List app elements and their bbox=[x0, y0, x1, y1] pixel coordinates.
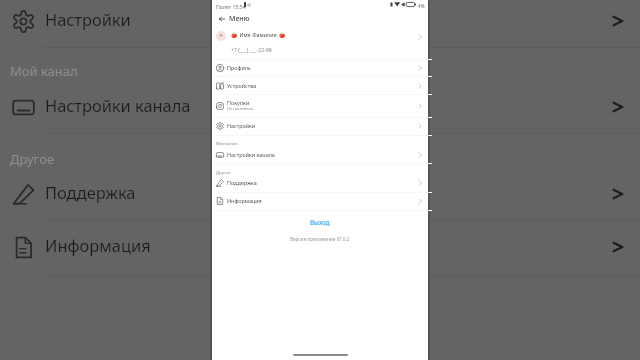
button[interactable]: 🍅 bbox=[212, 23, 428, 55]
staticText: Настройки канала bbox=[227, 151, 275, 158]
staticText: Мой канал bbox=[216, 141, 238, 147]
staticText: Другое bbox=[216, 170, 231, 176]
staticText: Выход bbox=[310, 218, 330, 226]
button[interactable]: Назад bbox=[214, 11, 230, 27]
staticText: Устройства bbox=[227, 82, 257, 89]
button[interactable]: Профиль bbox=[212, 59, 428, 77]
staticText: Настройки bbox=[227, 122, 256, 129]
staticText: +7 (___) ___-22-98 bbox=[231, 46, 272, 53]
button[interactable]: Выход bbox=[298, 215, 342, 229]
staticText: Версия приложения 37.0.2 bbox=[290, 236, 350, 242]
staticText: Информация bbox=[45, 234, 151, 256]
button[interactable]: Настройки канала bbox=[212, 146, 428, 164]
staticText: Имя Фамилия bbox=[238, 31, 279, 38]
staticText: Поддержка bbox=[227, 179, 257, 186]
staticText: Поддержка bbox=[45, 181, 136, 203]
button[interactable]: Поддержка bbox=[212, 174, 428, 192]
staticText: 4% bbox=[418, 3, 425, 9]
staticText: Настройки канала bbox=[45, 94, 191, 116]
staticText: Покупки bbox=[227, 99, 250, 106]
staticText: Мой канал bbox=[10, 62, 78, 80]
staticText: Информация bbox=[227, 197, 262, 204]
button[interactable]: Устройства bbox=[212, 77, 428, 95]
staticText: Профиль bbox=[227, 64, 251, 71]
button[interactable]: Покупки bbox=[212, 95, 428, 116]
staticText: 🍅 bbox=[231, 32, 238, 38]
button[interactable]: Информация bbox=[212, 192, 428, 210]
staticText: 🍅 bbox=[279, 32, 286, 38]
button[interactable]: Настройки bbox=[212, 117, 428, 135]
staticText: Настройки bbox=[45, 8, 131, 30]
staticText: Другое bbox=[10, 150, 55, 168]
staticText: Нет активных bbox=[227, 106, 254, 111]
staticText: Меню bbox=[229, 14, 250, 24]
staticText: Полет 15:54 bbox=[216, 3, 246, 10]
